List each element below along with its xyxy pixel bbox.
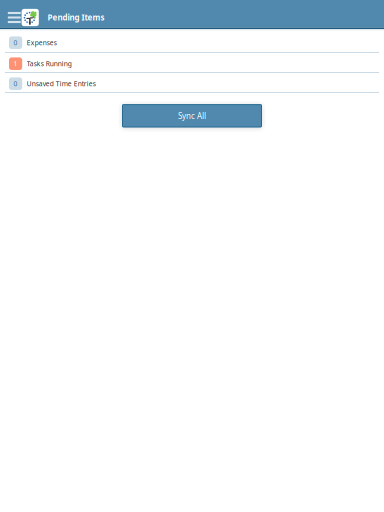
staticText: Expenses [27,38,57,47]
staticText: Tasks Running [27,59,72,68]
staticText: 0 [14,38,18,47]
staticText: Sync All [178,110,206,121]
staticText: Pending Items [48,12,105,23]
staticText: 0 [14,79,18,88]
staticText: 1 [14,59,18,68]
button[interactable]: 1 [0,53,384,73]
button[interactable]: Sync All [122,105,261,127]
button[interactable]: 0 [0,73,384,93]
button[interactable]: Home [22,9,39,26]
staticText: Unsaved Time Entries [27,79,96,88]
button[interactable]: Menu [0,9,22,26]
button[interactable]: 0 [0,31,384,53]
